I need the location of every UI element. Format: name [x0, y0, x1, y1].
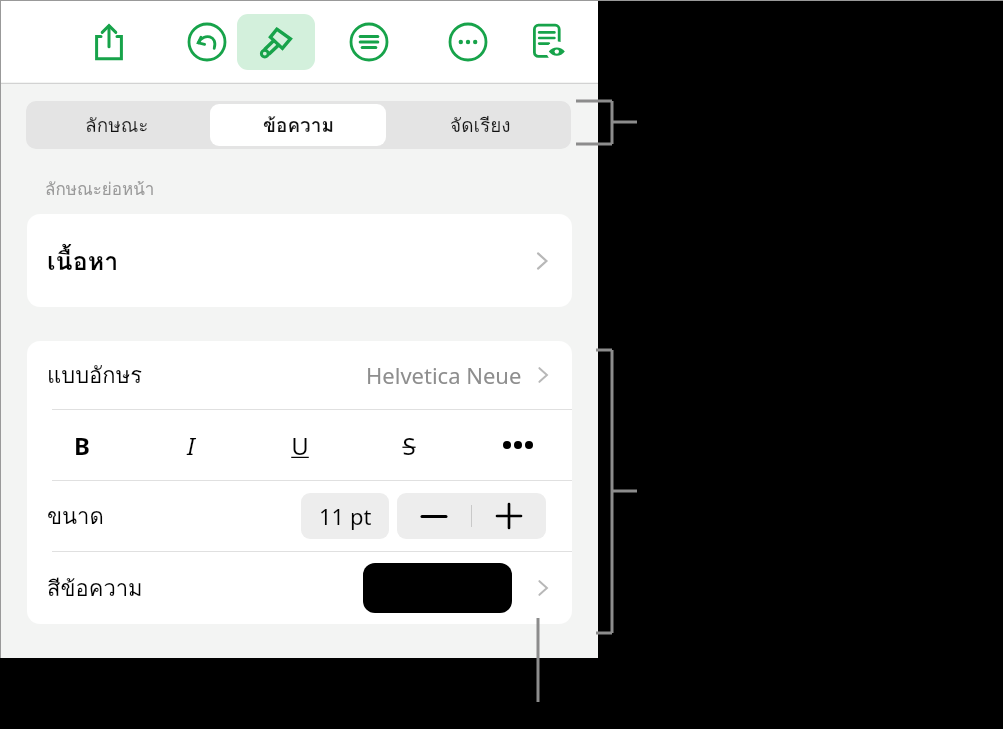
button[interactable]: Decrease size: [397, 493, 471, 539]
button[interactable]: ข้อความ: [210, 104, 386, 146]
staticText: ข้อความ: [263, 110, 334, 140]
staticText: Helvetica Neue: [366, 360, 522, 390]
button[interactable]: U: [245, 410, 354, 480]
button[interactable]: ลักษณะ: [29, 104, 204, 146]
button[interactable]: B: [27, 410, 136, 480]
staticText: ลักษณะย่อหน้า: [45, 175, 155, 202]
staticText: U: [291, 429, 309, 462]
staticText: 11 pt: [319, 501, 372, 531]
staticText: ลักษณะ: [85, 110, 149, 140]
button[interactable]: Share: [81, 14, 137, 70]
staticText: เนื้อหา: [47, 241, 119, 281]
button[interactable]: Undo: [179, 14, 235, 70]
button[interactable]: More text options: [463, 410, 572, 480]
button[interactable]: More: [440, 14, 496, 70]
staticText: S: [402, 429, 416, 462]
staticText: สีข้อความ: [47, 571, 143, 606]
button[interactable]: Paragraph: [341, 14, 397, 70]
button[interactable]: สีข้อความ: [27, 552, 572, 624]
staticText: จัดเรียง: [450, 110, 511, 140]
button[interactable]: S: [354, 410, 463, 480]
staticText: I: [187, 429, 195, 462]
button[interactable]: Increase size: [472, 493, 546, 539]
button[interactable]: 11 pt: [301, 493, 389, 539]
button[interactable]: เนื้อหา: [27, 214, 572, 307]
staticText: ขนาด: [47, 499, 104, 534]
button[interactable]: Format: [237, 14, 315, 70]
button[interactable]: จัดเรียง: [392, 104, 568, 146]
staticText: แบบอักษร: [47, 358, 142, 393]
staticText: B: [74, 429, 90, 462]
button[interactable]: I: [136, 410, 245, 480]
button[interactable]: แบบอักษร: [27, 341, 572, 409]
button[interactable]: Document: [520, 14, 576, 70]
